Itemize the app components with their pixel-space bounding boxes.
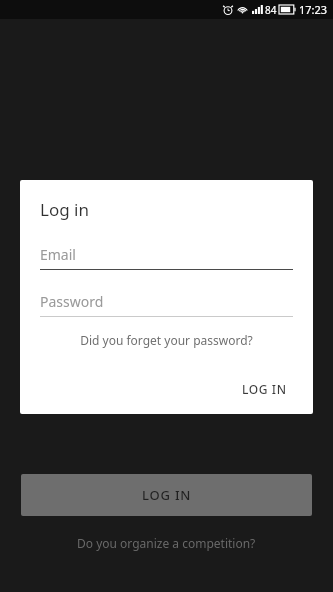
button[interactable]: Password xyxy=(40,290,293,317)
staticText: 17:23 xyxy=(299,2,328,17)
staticText: Did you forget your password? xyxy=(80,332,253,348)
staticText: LOG IN xyxy=(142,486,192,504)
staticText: Log in xyxy=(40,198,89,221)
staticText: Email xyxy=(40,245,76,264)
button[interactable]: LOG IN xyxy=(236,376,293,402)
button[interactable]: Email xyxy=(40,243,293,270)
button[interactable]: LOG IN xyxy=(21,474,312,516)
button[interactable]: Do you organize a competition? xyxy=(0,531,333,555)
staticText: 84 xyxy=(265,3,277,17)
staticText: Do you organize a competition? xyxy=(77,535,256,551)
staticText: Password xyxy=(40,292,104,311)
button[interactable]: Did you forget your password? xyxy=(40,329,293,351)
staticText: LOG IN xyxy=(242,381,287,397)
